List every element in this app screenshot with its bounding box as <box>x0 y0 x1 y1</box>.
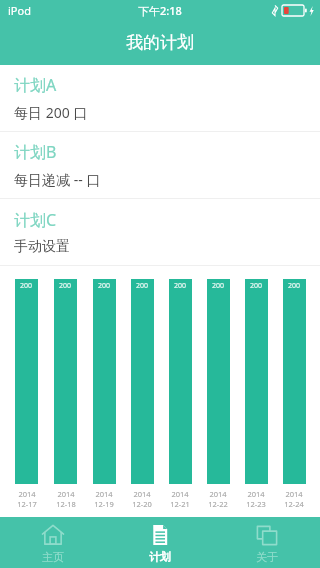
button[interactable]: 关于 <box>213 517 320 568</box>
staticText: 每日 200 口 <box>14 103 88 122</box>
staticText: 12-17 <box>17 499 37 509</box>
staticText: iPod <box>8 3 31 18</box>
staticText: 200 <box>98 281 111 291</box>
staticText: 12-24 <box>284 499 304 509</box>
staticText: 2014 <box>171 489 189 499</box>
staticText: 手动设置 <box>14 238 70 256</box>
staticText: 200 <box>288 281 301 291</box>
button[interactable]: 计划 <box>106 517 213 568</box>
staticText: 关于 <box>256 550 278 564</box>
other: 主页 <box>41 523 65 547</box>
staticText: 200 <box>59 281 72 291</box>
button[interactable]: 计划A <box>0 65 320 131</box>
staticText: 200 <box>250 281 263 291</box>
staticText: 2014 <box>209 489 227 499</box>
staticText: 12-19 <box>94 499 114 509</box>
staticText: 计划C <box>14 209 57 231</box>
staticText: 2014 <box>247 489 265 499</box>
staticText: 计划B <box>14 141 57 163</box>
staticText: 12-20 <box>132 499 152 509</box>
staticText: 2014 <box>95 489 113 499</box>
staticText: 200 <box>20 281 33 291</box>
staticText: 2014 <box>57 489 75 499</box>
button[interactable]: 计划C <box>0 199 320 265</box>
staticText: 计划A <box>14 74 57 96</box>
staticText: 12-23 <box>246 499 266 509</box>
staticText: 2014 <box>18 489 36 499</box>
staticText: 计划 <box>149 550 171 564</box>
other: 计划 <box>148 523 172 547</box>
staticText: 每日递减 -- 口 <box>14 170 101 189</box>
staticText: 主页 <box>42 550 64 564</box>
other: 关于 <box>255 523 279 547</box>
button[interactable]: 主页 <box>0 517 106 568</box>
button[interactable]: 计划B <box>0 132 320 198</box>
staticText: 我的计划 <box>126 32 194 53</box>
staticText: 2014 <box>285 489 303 499</box>
staticText: 200 <box>212 281 225 291</box>
staticText: 200 <box>136 281 149 291</box>
staticText: 12-21 <box>170 499 190 509</box>
staticText: 2014 <box>133 489 151 499</box>
staticText: 12-22 <box>208 499 228 509</box>
staticText: 12-18 <box>56 499 76 509</box>
staticText: 200 <box>174 281 187 291</box>
staticText: 下午2:18 <box>138 3 182 18</box>
